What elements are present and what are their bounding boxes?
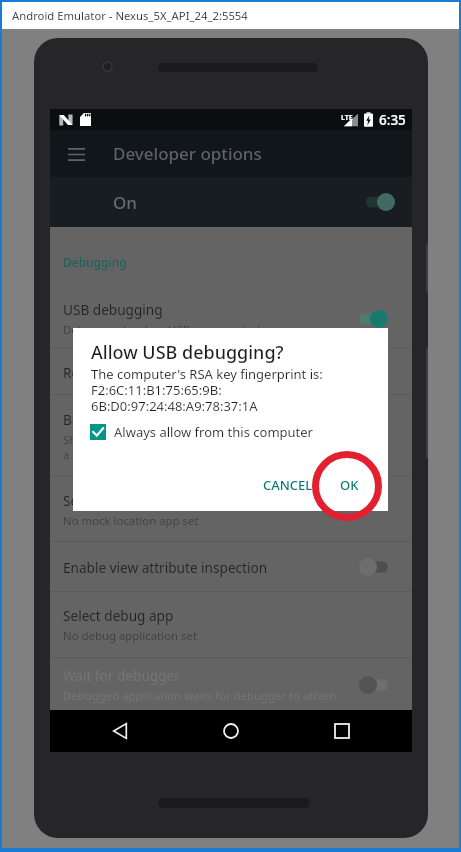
staticText: CANCEL — [263, 476, 313, 494]
staticText: Show a button in the power menu for taki… — [63, 432, 300, 462]
staticText: OK — [340, 476, 359, 494]
staticText: Developer options — [113, 142, 262, 165]
staticText: The computer's RSA key fingerprint is: F… — [91, 365, 323, 414]
button[interactable]: Open navigation drawer — [56, 134, 96, 174]
button[interactable]: Bug report shortcut — [50, 395, 412, 477]
button[interactable]: Revoke USB debugging authorizations — [50, 349, 412, 395]
button[interactable]: CANCEL — [255, 470, 321, 500]
button[interactable]: Back — [100, 711, 140, 751]
staticText: Android Emulator - Nexus_5X_API_24_2:555… — [12, 8, 248, 23]
staticText: Bug report shortcut — [63, 410, 190, 429]
button[interactable]: Select mock location app — [50, 477, 412, 542]
button[interactable]: Select debug app — [50, 592, 412, 658]
staticText: Allow USB debugging? — [91, 340, 284, 365]
staticText: On — [113, 191, 137, 214]
button[interactable]: Always allow from this computer — [90, 423, 313, 441]
staticText: Select debug app — [63, 606, 174, 625]
staticText: Select mock location app — [63, 491, 222, 510]
staticText: Debugging — [63, 254, 127, 270]
staticText: Enable view attribute inspection — [63, 558, 268, 577]
button[interactable]: OK — [332, 470, 367, 500]
staticText: Debug mode when USB is connected — [63, 322, 261, 338]
button[interactable]: Debugging — [50, 227, 412, 289]
staticText: USB debugging — [63, 300, 163, 319]
button[interactable]: Recent apps — [322, 711, 362, 751]
staticText: No mock location app set — [63, 513, 199, 529]
button[interactable]: Enable view attribute inspection — [50, 542, 412, 592]
staticText: Debugged application waits for debugger … — [63, 688, 337, 704]
button[interactable]: Wait for debugger — [50, 658, 412, 711]
button[interactable]: USB debugging — [50, 289, 412, 349]
button[interactable]: Home — [211, 711, 251, 751]
staticText: No debug application set — [63, 628, 198, 644]
staticText: Wait for debugger — [63, 666, 180, 685]
staticText: 6:35 — [379, 111, 406, 129]
staticText: LTE — [341, 113, 353, 123]
staticText: Always allow from this computer — [114, 423, 313, 441]
staticText: Revoke USB debugging authorizations — [63, 363, 308, 382]
button[interactable]: On — [50, 177, 412, 227]
